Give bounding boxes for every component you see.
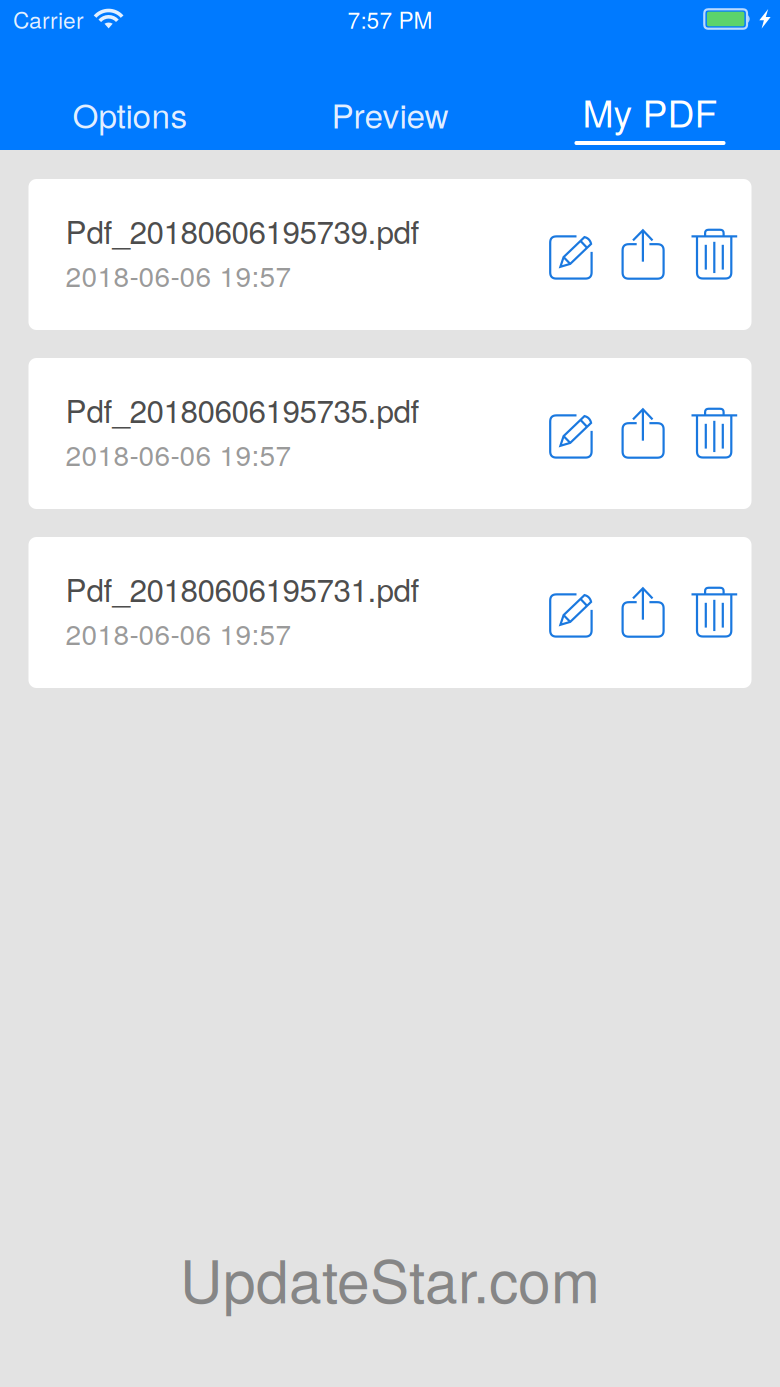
button[interactable]: Rename [534,212,606,296]
button[interactable]: Options [0,38,260,150]
button[interactable]: Delete [678,391,750,475]
staticText: My PDF [582,84,717,138]
button[interactable]: Rename [534,570,606,654]
staticText: Pdf_20180606195739.pdf [65,208,419,253]
button[interactable]: Delete [678,212,750,296]
staticText: 2018-06-06 19:57 [65,255,291,295]
button[interactable]: Share [606,570,678,654]
button[interactable]: Share [606,212,678,296]
staticText: Pdf_20180606195735.pdf [65,387,419,432]
staticText: Carrier [13,3,84,35]
staticText: 2018-06-06 19:57 [65,613,291,653]
staticText: 2018-06-06 19:57 [65,434,291,474]
staticText: Preview [331,90,448,138]
staticText: 7:57 PM [347,3,432,35]
button[interactable]: Share [606,391,678,475]
staticText: UpdateStar.com [180,1236,600,1320]
staticText: Options [72,90,187,138]
button[interactable]: My PDF [520,38,780,150]
button[interactable]: Rename [534,391,606,475]
button[interactable]: Preview [260,38,520,150]
button[interactable]: Delete [678,570,750,654]
staticText: Pdf_20180606195731.pdf [65,566,419,611]
